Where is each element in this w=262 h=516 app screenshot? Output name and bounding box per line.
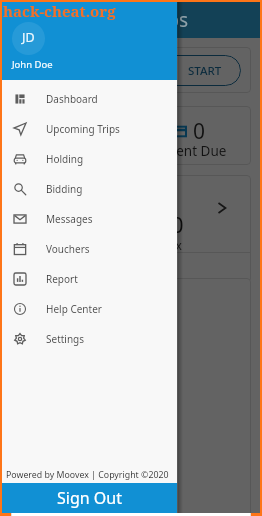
staticText: Upcoming Trips: [46, 122, 120, 136]
button[interactable]: Report: [2, 264, 177, 294]
button[interactable]: Dashboard: [2, 84, 177, 114]
other: Details: [217, 203, 227, 213]
staticText: Dashboard: [46, 92, 98, 106]
staticText: Bidding: [46, 182, 83, 196]
staticText: hack-cheat.org: [3, 1, 116, 21]
staticText: My Trips: [113, 7, 189, 33]
staticText: Settings: [46, 332, 85, 346]
staticText: Powered by Moovex | Copyright ©2020: [6, 469, 169, 481]
staticText: Vouchers: [46, 242, 90, 256]
button[interactable]: Upcoming Trips: [2, 114, 177, 144]
button[interactable]: Sign Out: [2, 483, 177, 513]
button[interactable]: Messages: [2, 204, 177, 234]
button[interactable]: Help Center: [2, 294, 177, 324]
button[interactable]: Vouchers: [2, 234, 177, 264]
staticText: 0: [193, 117, 206, 146]
button[interactable]: Settings: [2, 324, 177, 354]
staticText: Report: [46, 272, 78, 286]
staticText: Sign Out: [57, 487, 122, 509]
button[interactable]: Holding: [2, 144, 177, 174]
button[interactable]: START: [21, 55, 241, 86]
staticText: START: [188, 63, 222, 79]
staticText: Holding: [46, 152, 84, 166]
staticText: John Doe: [12, 58, 53, 71]
button[interactable]: Bidding: [2, 174, 177, 204]
staticText: Tax: [163, 237, 182, 253]
staticText: JD: [22, 29, 35, 46]
staticText: Help Center: [46, 302, 102, 316]
staticText: Payment Due: [141, 142, 227, 160]
staticText: 0: [171, 209, 184, 239]
staticText: Messages: [46, 212, 93, 226]
